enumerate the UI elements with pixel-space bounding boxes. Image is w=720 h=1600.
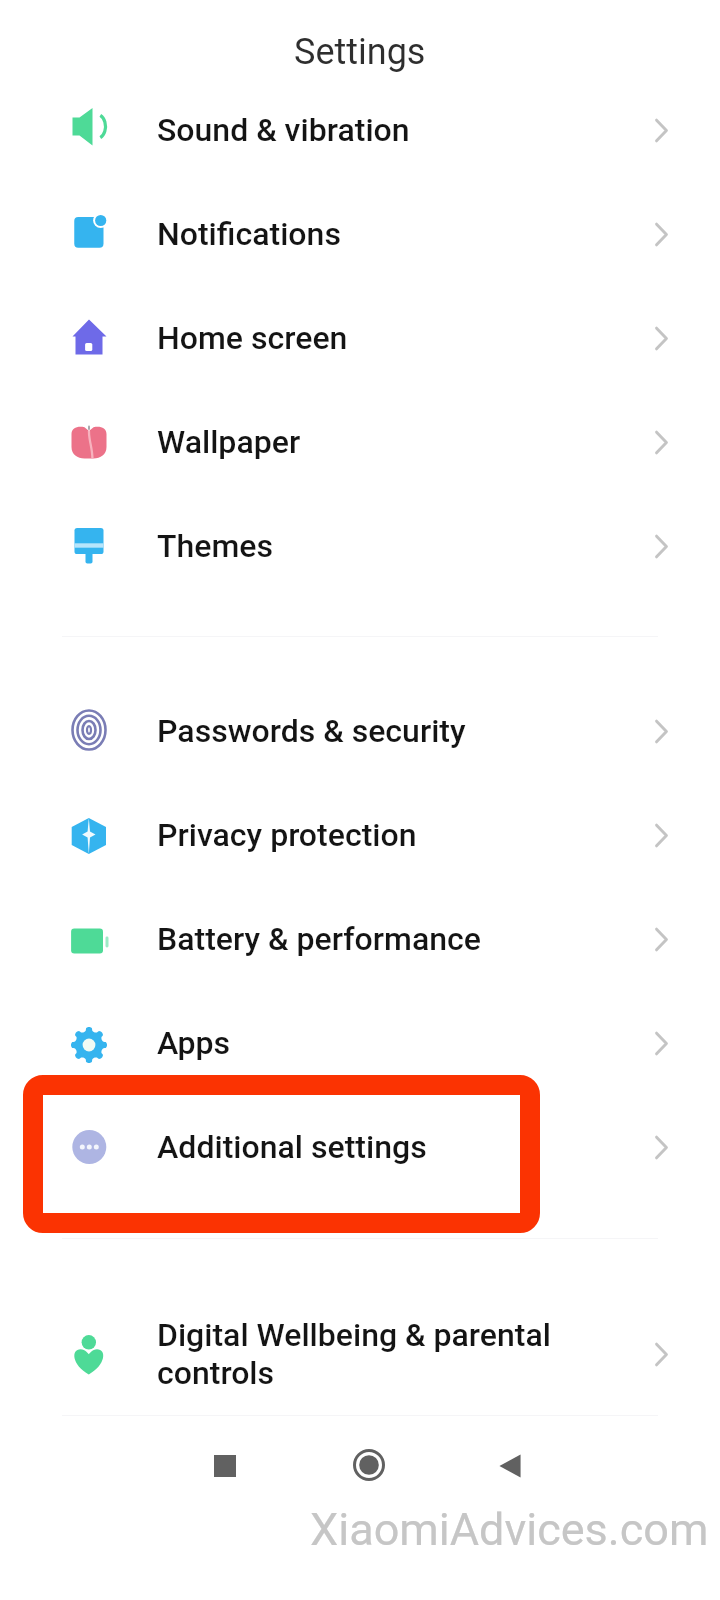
staticText: Notifications: [157, 215, 614, 253]
staticText: Settings: [294, 31, 426, 73]
button[interactable]: Wallpaper: [0, 390, 720, 494]
staticText: Battery & performance: [157, 920, 614, 958]
button[interactable]: Themes: [0, 494, 720, 598]
button[interactable]: Battery & performance: [0, 887, 720, 991]
staticText: Sound & vibration: [157, 111, 614, 149]
button[interactable]: Home screen: [0, 286, 720, 390]
button[interactable]: Privacy protection: [0, 783, 720, 887]
button[interactable]: Apps: [0, 991, 720, 1095]
button[interactable]: Recents: [190, 1431, 260, 1501]
staticText: Themes: [157, 527, 614, 565]
staticText: Apps: [157, 1024, 614, 1062]
staticText: Privacy protection: [157, 816, 614, 854]
staticText: Passwords & security: [157, 712, 614, 750]
button[interactable]: Sound & vibration: [0, 78, 720, 182]
button[interactable]: Home: [334, 1430, 404, 1500]
button[interactable]: Notifications: [0, 182, 720, 286]
staticText: Home screen: [157, 319, 614, 357]
staticText: Additional settings: [157, 1128, 614, 1166]
staticText: XiaomiAdvices.com: [310, 1503, 709, 1556]
button[interactable]: Back: [475, 1431, 545, 1501]
button[interactable]: Passwords & security: [0, 679, 720, 783]
staticText: Wallpaper: [157, 423, 614, 461]
button[interactable]: Additional settings: [0, 1095, 720, 1199]
button[interactable]: Digital Wellbeing & parental controls: [0, 1302, 720, 1406]
staticText: Digital Wellbeing & parental controls: [157, 1316, 614, 1392]
